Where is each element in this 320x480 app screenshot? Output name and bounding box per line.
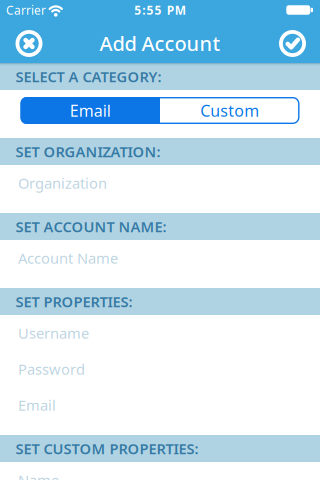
- staticText: Carrier: [6, 2, 46, 18]
- staticText: SET ACCOUNT NAME:: [15, 217, 166, 236]
- button[interactable]: Name: [0, 462, 320, 480]
- button[interactable]: Account Name: [0, 240, 320, 276]
- staticText: SELECT A CATEGORY:: [15, 67, 161, 86]
- staticText: Custom: [200, 100, 259, 121]
- staticText: SET CUSTOM PROPERTIES:: [15, 439, 198, 458]
- staticText: Email: [18, 395, 56, 415]
- staticText: Email: [70, 100, 111, 121]
- staticText: Password: [18, 359, 85, 379]
- staticText: 5:55 PM: [134, 2, 186, 18]
- button[interactable]: Email: [20, 97, 160, 124]
- button[interactable]: Organization: [0, 165, 320, 201]
- staticText: Organization: [18, 173, 107, 193]
- button[interactable]: Cancel: [15, 30, 42, 57]
- button[interactable]: Password: [0, 351, 320, 387]
- button[interactable]: Custom: [160, 97, 299, 124]
- staticText: Account Name: [18, 248, 118, 268]
- button[interactable]: Email: [0, 387, 320, 423]
- staticText: SET PROPERTIES:: [15, 292, 132, 311]
- staticText: SET ORGANIZATION:: [15, 142, 160, 161]
- button[interactable]: Done: [279, 30, 306, 57]
- button[interactable]: Username: [0, 315, 320, 351]
- staticText: Add Account: [99, 30, 220, 57]
- staticText: Username: [18, 323, 89, 343]
- staticText: Name: [18, 470, 59, 480]
